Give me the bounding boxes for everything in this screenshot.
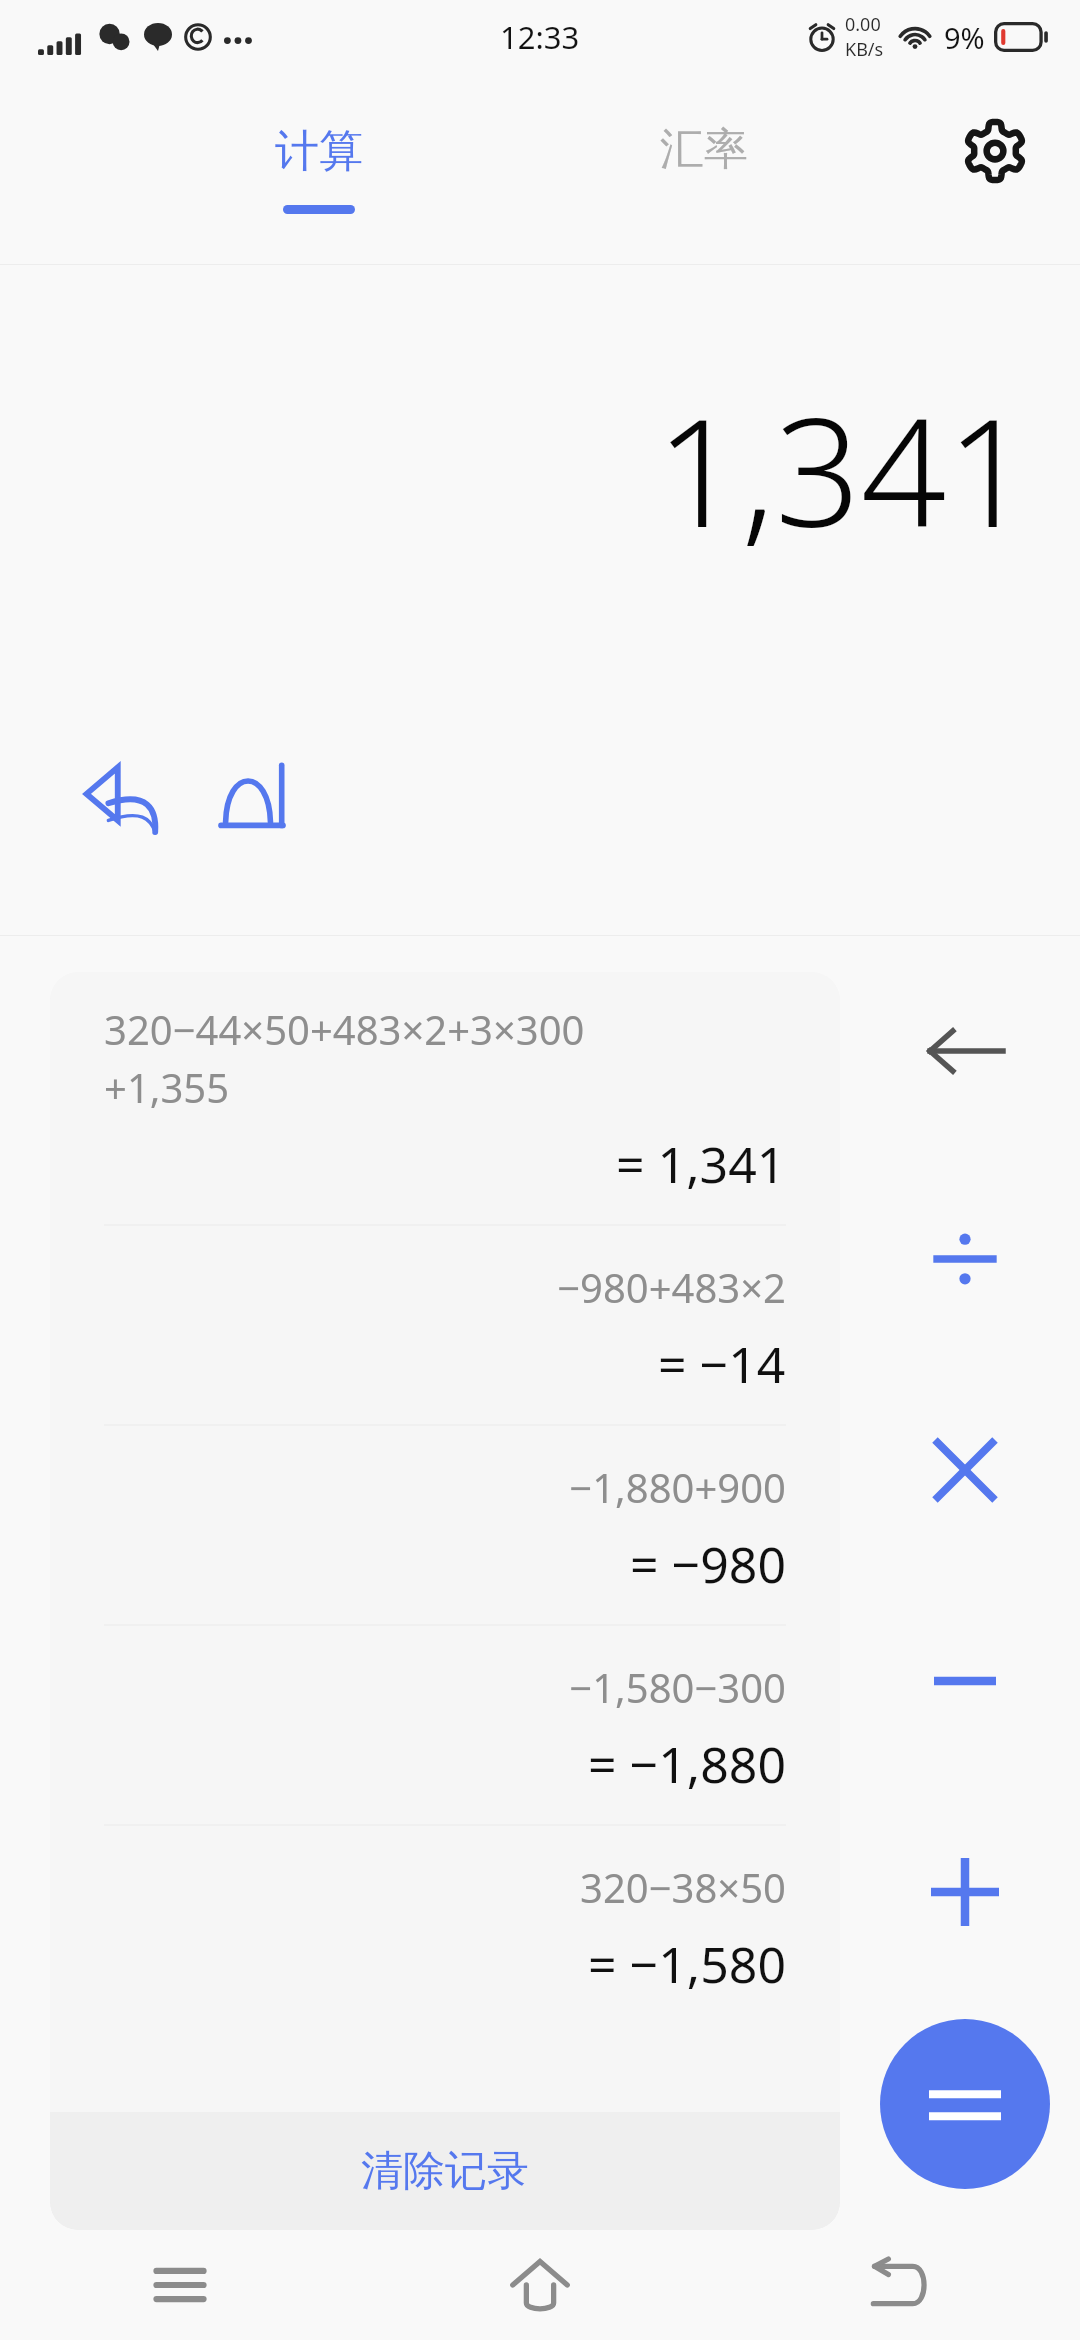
staticText: 320−38×50 [580, 1860, 786, 1914]
button[interactable]: 320−38×50 [104, 1826, 786, 2024]
staticText: = −1,580 [588, 1930, 786, 1998]
button[interactable]: Back [720, 2230, 1080, 2340]
button[interactable]: Undo [70, 743, 178, 851]
staticText: −1,580−300 [569, 1660, 786, 1714]
staticText: 12:33 [500, 16, 580, 58]
button[interactable]: 汇率 [640, 112, 768, 187]
staticText: = −980 [630, 1530, 786, 1598]
staticText: = −14 [658, 1330, 786, 1398]
staticText: −1,880+900 [569, 1460, 786, 1514]
button[interactable]: Divide [890, 1184, 1040, 1334]
staticText: KB/s [845, 37, 884, 62]
staticText: 0.00 [845, 12, 881, 37]
button[interactable]: 清除记录 [50, 2112, 840, 2230]
button[interactable]: −1,580−300 [104, 1626, 786, 1824]
button[interactable]: Plus [890, 1817, 1040, 1967]
staticText: 计算 [275, 124, 363, 179]
button[interactable]: Equals [880, 2019, 1050, 2189]
button[interactable]: Home [360, 2230, 720, 2340]
button[interactable]: −1,880+900 [104, 1426, 786, 1624]
staticText: 9% [944, 18, 985, 57]
staticText: −980+483×2 [557, 1260, 786, 1314]
staticText: 汇率 [660, 122, 748, 177]
button[interactable]: Minus [890, 1606, 1040, 1756]
button[interactable]: 320−44×50+483×2+3×300 [104, 972, 786, 1224]
button[interactable]: Settings [940, 96, 1050, 206]
staticText: = −1,880 [588, 1730, 786, 1798]
button[interactable]: Recent apps [0, 2230, 360, 2340]
staticText: = 1,341 [616, 1130, 786, 1198]
staticText: 320−44×50+483×2+3×300 [104, 1002, 786, 1056]
button[interactable]: Backspace [890, 976, 1040, 1126]
staticText: 清除记录 [361, 2145, 529, 2198]
staticText: +1,355 [104, 1060, 786, 1114]
staticText: 1,341 [655, 367, 1032, 571]
button[interactable]: Function graph [198, 743, 306, 851]
button[interactable]: Multiply [890, 1395, 1040, 1545]
button[interactable]: 计算 [255, 114, 383, 224]
button[interactable]: −980+483×2 [104, 1226, 786, 1424]
